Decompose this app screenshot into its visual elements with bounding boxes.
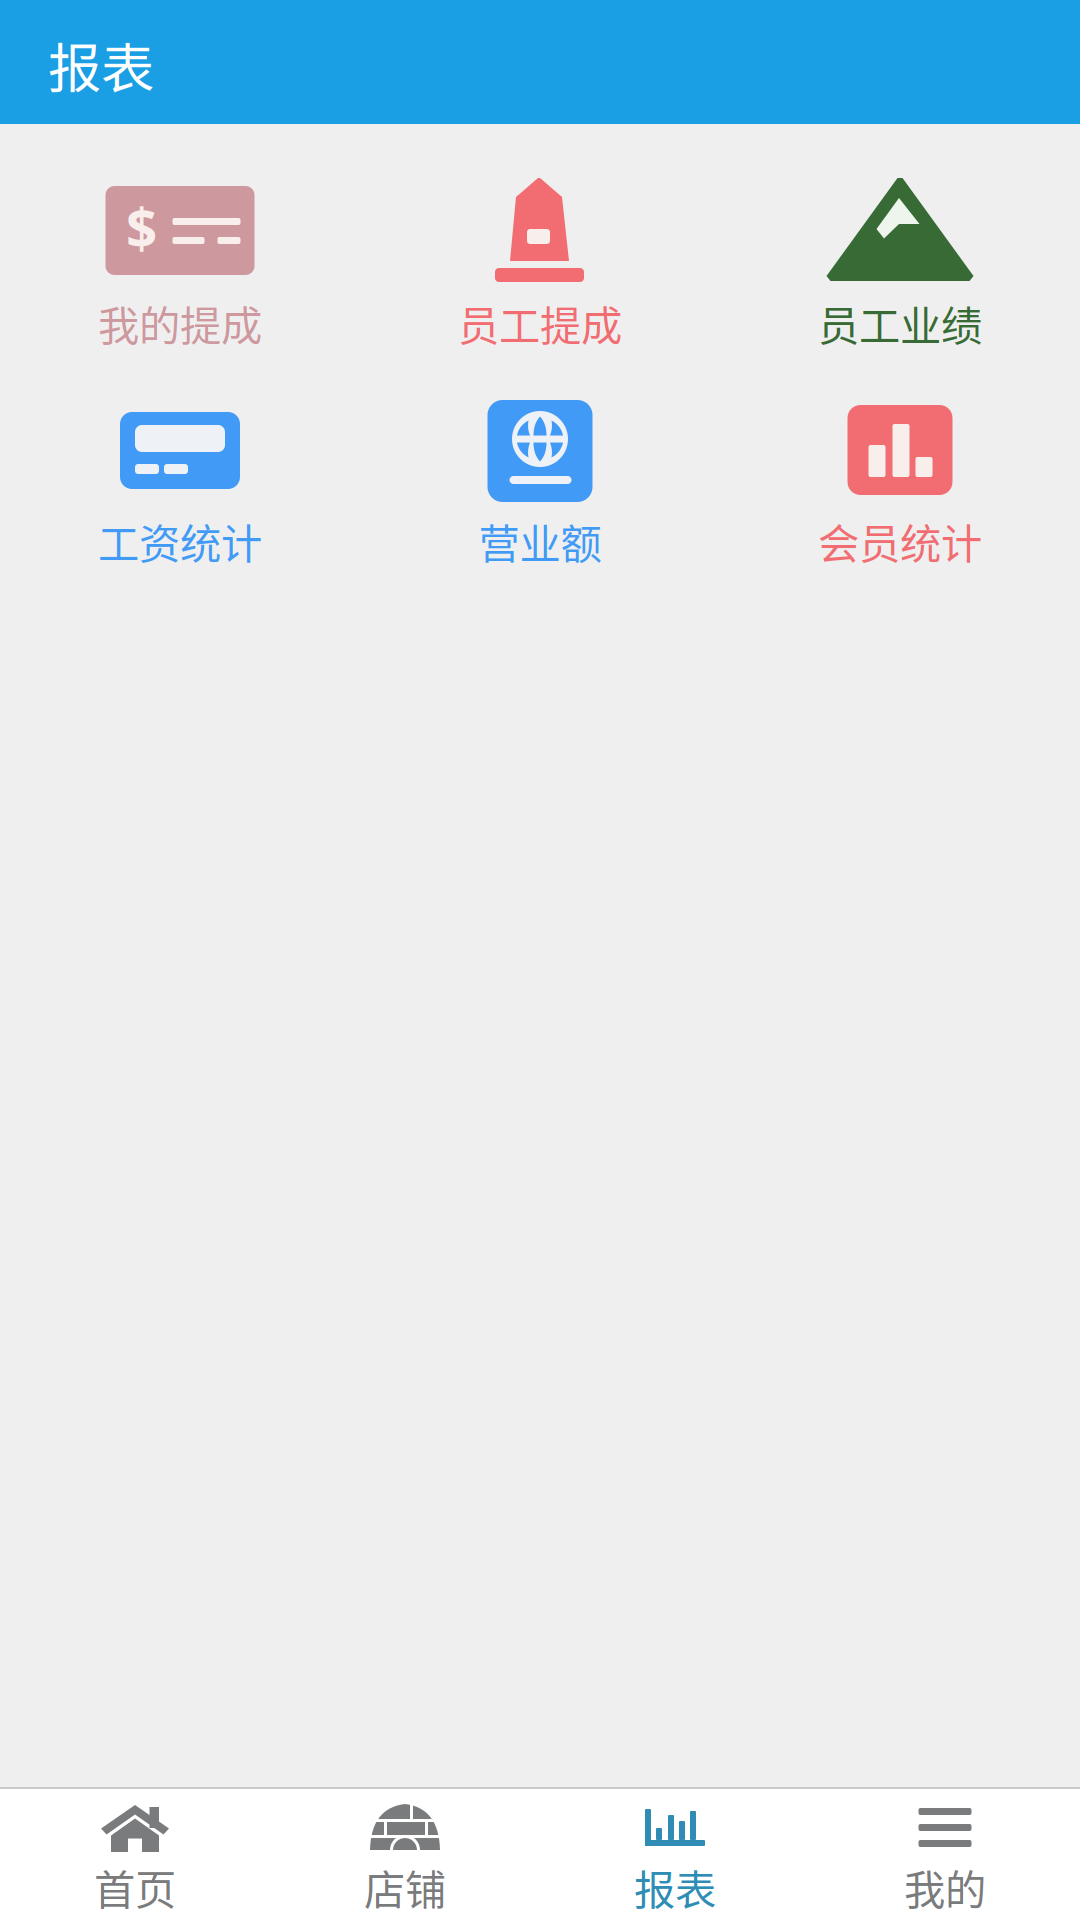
button[interactable]: $ [0, 124, 360, 349]
staticText: 营业额 [478, 511, 601, 571]
staticText: $ [126, 191, 157, 263]
button[interactable]: 员工业绩 [720, 124, 1080, 349]
staticText: 员工业绩 [818, 293, 982, 353]
staticText: 首页 [94, 1857, 176, 1917]
button[interactable]: 报表 [540, 1787, 810, 1920]
staticText: 报表 [634, 1857, 716, 1917]
staticText: 店铺 [364, 1857, 446, 1917]
button[interactable]: 店铺 [270, 1787, 540, 1920]
button[interactable]: 工资统计 [0, 349, 360, 574]
button[interactable]: 员工提成 [360, 124, 720, 349]
button[interactable]: 会员统计 [720, 349, 1080, 574]
staticText: 员工提成 [458, 293, 622, 353]
staticText: 我的 [904, 1857, 986, 1917]
staticText: 报表 [48, 26, 154, 104]
staticText: 我的提成 [98, 293, 262, 353]
staticText: 会员统计 [818, 511, 982, 571]
button[interactable]: 营业额 [360, 349, 720, 574]
button[interactable]: 首页 [0, 1787, 270, 1920]
button[interactable]: 我的 [810, 1787, 1080, 1920]
staticText: 工资统计 [98, 511, 262, 571]
